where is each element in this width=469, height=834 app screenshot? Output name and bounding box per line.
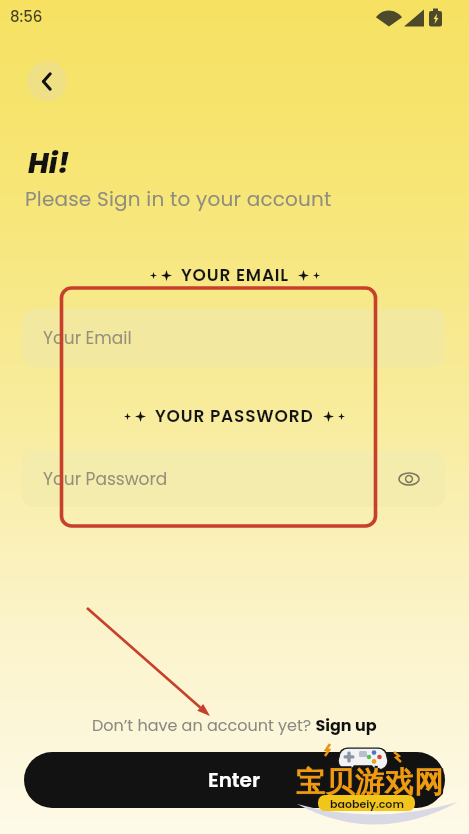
staticText: Your Email <box>43 326 132 350</box>
staticText: baobeiy.com <box>330 796 404 811</box>
staticText: 宝贝游戏网 <box>298 764 446 801</box>
staticText: 宝贝游戏网 <box>294 764 442 801</box>
button[interactable]: Enter <box>24 752 445 808</box>
button[interactable]: Sign up <box>312 714 377 736</box>
staticText: 宝贝游戏网 <box>296 762 444 799</box>
staticText: Hi! <box>28 144 70 183</box>
staticText: 宝贝游戏网 <box>296 764 444 801</box>
button[interactable] <box>27 61 67 101</box>
staticText: 宝贝游戏网 <box>296 766 444 803</box>
staticText: Don’t have an account yet? <box>92 714 312 736</box>
staticText: Your Password <box>43 467 168 491</box>
staticText: YOUR EMAIL <box>181 263 289 287</box>
staticText: Enter <box>208 766 261 794</box>
button[interactable]: Your Password <box>22 451 445 507</box>
staticText: YOUR PASSWORD <box>155 404 314 428</box>
button[interactable]: Your Email <box>22 309 445 367</box>
staticText: Please Sign in to your account <box>25 185 332 213</box>
staticText: 8:56 <box>10 6 43 27</box>
